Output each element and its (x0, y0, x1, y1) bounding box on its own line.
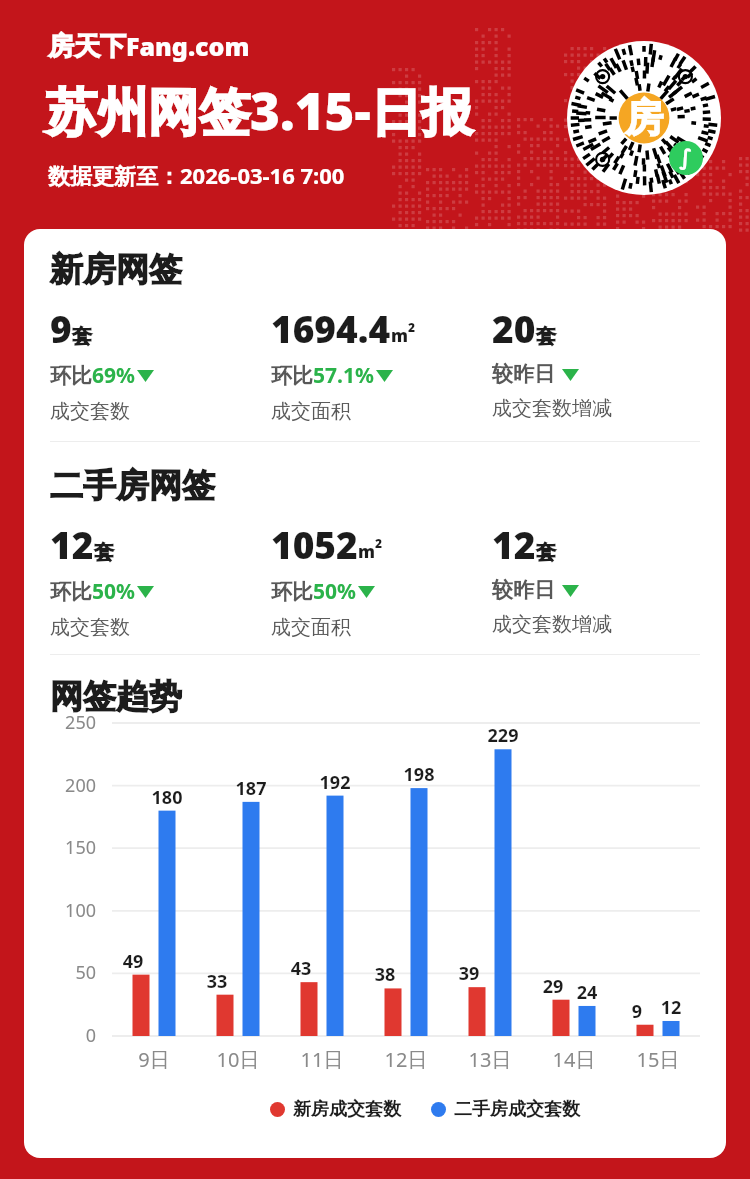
staticText: 33 (187, 969, 247, 994)
staticText: 39 (439, 961, 499, 986)
staticText: 12 (641, 995, 701, 1020)
staticText: 43 (271, 956, 331, 981)
button[interactable]: 1052 (271, 519, 492, 640)
staticText: 250 (38, 710, 96, 735)
staticText: 房 (625, 94, 663, 142)
button[interactable]: 小程序二维码 (567, 41, 721, 195)
staticText: 12 (492, 519, 536, 569)
staticText: 20 (492, 303, 536, 353)
staticText: 9 (50, 303, 72, 353)
staticText: 50 (38, 960, 96, 985)
staticText: Fang.com (126, 29, 250, 63)
staticText: 180 (137, 785, 197, 810)
staticText: 环比 (271, 363, 313, 389)
staticText: 38 (355, 962, 415, 987)
staticText: 二手房成交套数 (454, 1098, 580, 1121)
staticText: 2 (408, 319, 416, 335)
staticText: 数据更新至：2026-03-16 7:00 (48, 160, 345, 190)
staticText: 187 (221, 776, 281, 801)
staticText: 100 (38, 898, 96, 923)
staticText: 49 (103, 949, 163, 974)
staticText: 14日 (539, 1046, 609, 1073)
staticText: 成交套数增减 (492, 612, 612, 637)
staticText: 套 (536, 324, 556, 349)
staticText: 苏州网签3.15-日报 (46, 75, 473, 145)
button[interactable]: 12 (492, 519, 718, 637)
button[interactable]: 房天下 Fang.com (48, 29, 250, 63)
staticText: 新房网签 (50, 249, 182, 291)
staticText: 12日 (371, 1046, 441, 1073)
staticText: 150 (38, 835, 96, 860)
staticText: 套 (536, 540, 556, 565)
staticText: 套 (94, 540, 114, 565)
staticText: 50% (313, 577, 356, 606)
staticText: 15日 (623, 1046, 693, 1073)
staticText: 1694.4 (271, 303, 391, 353)
staticText: ∫ (679, 145, 693, 171)
staticText: 套 (72, 324, 92, 349)
staticText: 24 (557, 980, 617, 1005)
staticText: 57.1% (313, 361, 374, 390)
staticText: 69% (92, 361, 135, 390)
staticText: 环比 (50, 579, 92, 605)
staticText: 192 (305, 770, 365, 795)
button[interactable]: 12 (50, 519, 271, 640)
staticText: 29 (523, 974, 583, 999)
staticText: 229 (473, 723, 533, 748)
staticText: 成交套数 (50, 615, 130, 640)
button[interactable]: 1694.4 (271, 303, 492, 424)
staticText: 成交面积 (271, 399, 351, 424)
staticText: 200 (38, 773, 96, 798)
staticText: 12 (50, 519, 94, 569)
staticText: 环比 (271, 579, 313, 605)
staticText: 11日 (287, 1046, 357, 1073)
staticText: 新房成交套数 (293, 1098, 401, 1121)
button[interactable]: 9 (50, 303, 271, 424)
staticText: 10日 (203, 1046, 273, 1073)
staticText: 成交面积 (271, 615, 351, 640)
staticText: 9日 (119, 1046, 189, 1073)
staticText: 9 (607, 999, 667, 1024)
staticText: 房天下 (48, 30, 126, 63)
staticText: 成交套数增减 (492, 396, 612, 421)
button[interactable]: 20 (492, 303, 718, 421)
staticText: 1052 (271, 519, 358, 569)
staticText: 50% (92, 577, 135, 606)
button[interactable]: 新房成交套数 (270, 1098, 580, 1121)
staticText: 二手房网签 (50, 465, 215, 507)
staticText: 成交套数 (50, 399, 130, 424)
staticText: 0 (38, 1023, 96, 1048)
staticText: m (391, 324, 408, 347)
staticText: 198 (389, 762, 449, 787)
staticText: 网签趋势 (50, 676, 182, 718)
staticText: 较昨日 (492, 361, 555, 387)
staticText: 较昨日 (492, 577, 555, 603)
staticText: m (358, 540, 375, 563)
staticText: 环比 (50, 363, 92, 389)
staticText: 13日 (455, 1046, 525, 1073)
staticText: 2 (375, 535, 383, 551)
